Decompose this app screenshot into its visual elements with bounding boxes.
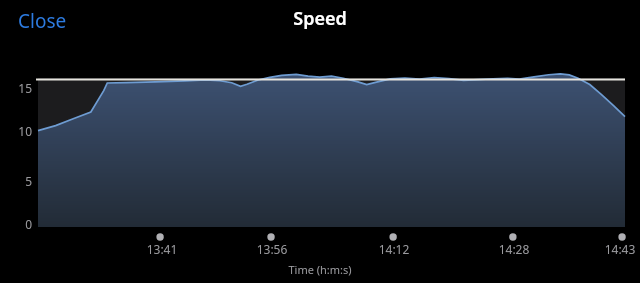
staticText: Time (h:m:s)	[0, 262, 640, 283]
staticText: 15	[0, 80, 32, 283]
staticText: 14:28	[490, 241, 538, 283]
staticText: 5	[0, 173, 32, 283]
staticText: 13:56	[248, 241, 296, 283]
staticText: 10	[0, 123, 32, 283]
staticText: 14:43	[596, 241, 640, 283]
staticText: 0	[0, 216, 32, 283]
staticText: 13:41	[138, 241, 186, 283]
staticText: 14:12	[370, 241, 418, 283]
button[interactable]: Close	[11, 3, 74, 39]
staticText: Speed	[0, 6, 640, 283]
staticText: Close	[18, 8, 67, 34]
